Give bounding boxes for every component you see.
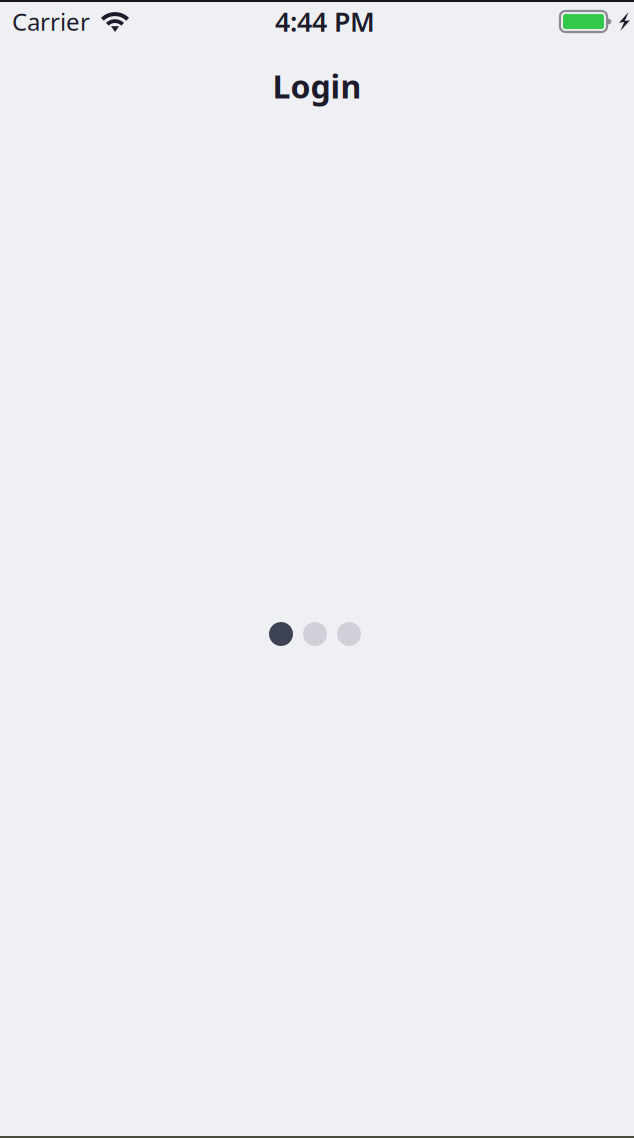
staticText: Login [272,65,361,107]
staticText: 4:44 PM [275,4,375,39]
staticText: Carrier [12,6,90,37]
